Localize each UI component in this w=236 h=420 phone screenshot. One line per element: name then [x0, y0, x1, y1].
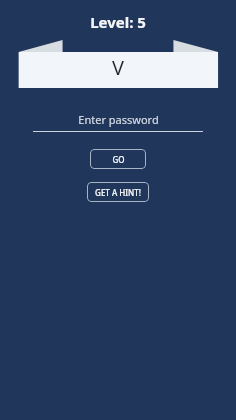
- staticText: V: [112, 54, 124, 81]
- staticText: Level: 5: [90, 12, 146, 32]
- staticText: GO: [112, 154, 125, 165]
- button[interactable]: GO: [90, 149, 146, 169]
- staticText: Enter password: [78, 112, 159, 127]
- button[interactable]: GET A HINT!: [87, 182, 149, 202]
- button[interactable]: Enter password: [33, 112, 203, 132]
- staticText: GET A HINT!: [95, 187, 141, 198]
